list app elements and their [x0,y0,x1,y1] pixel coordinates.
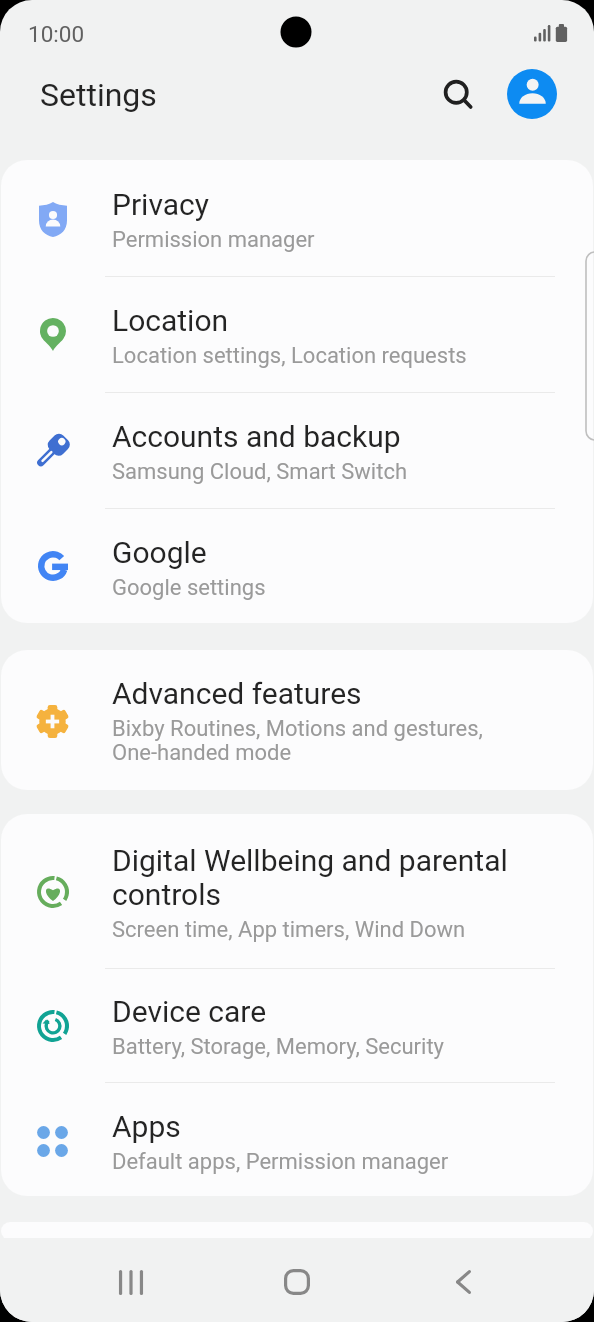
button[interactable]: Search [434,70,486,122]
button[interactable]: Back [431,1250,495,1314]
staticText: Settings [40,76,157,114]
button[interactable]: Apps [1,1082,593,1196]
button[interactable]: Device care [1,968,593,1082]
button[interactable]: Home [265,1250,329,1314]
button[interactable]: Privacy [1,160,593,276]
button[interactable]: Digital Wellbeing and parental controls [1,814,593,968]
staticText: Bixby Routines, Motions and gestures, On… [112,717,483,765]
staticText: Default apps, Permission manager [112,1150,449,1174]
staticText: Digital Wellbeing and parental controls [112,844,508,912]
button[interactable]: Advanced features [1,650,593,790]
staticText: Samsung Cloud, Smart Switch [112,460,408,484]
staticText: Screen time, App timers, Wind Down [112,918,466,942]
button[interactable]: Account [507,69,557,119]
staticText: Battery, Storage, Memory, Security [112,1035,445,1059]
staticText: Advanced features [112,677,362,711]
button[interactable]: Location [1,276,593,392]
staticText: Device care [112,995,267,1029]
staticText: Privacy [112,188,209,222]
staticText: Permission manager [112,228,315,252]
staticText: Google settings [112,576,266,600]
staticText: Accounts and backup [112,420,401,454]
staticText: Apps [112,1110,181,1144]
staticText: Google [112,536,207,570]
button[interactable]: Accounts and backup [1,392,593,508]
button[interactable]: Google [1,508,593,623]
staticText: Location settings, Location requests [112,344,467,368]
staticText: 10:00 [28,21,85,47]
staticText: Location [112,304,229,338]
button[interactable]: Recents [99,1250,163,1314]
